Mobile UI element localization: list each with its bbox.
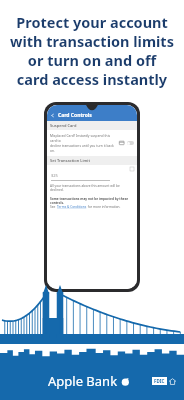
staticText: Some transactions may not be impacted by… [50, 197, 134, 205]
button[interactable]: Terms & Conditions [57, 205, 87, 209]
staticText: Card Controls [58, 112, 92, 119]
staticText: See [50, 205, 57, 209]
staticText: $25 [51, 173, 58, 178]
button[interactable]: Misplaced Card? Instantly suspend this c… [47, 130, 137, 156]
button[interactable]: Back [50, 112, 92, 119]
staticText: for more information. [87, 205, 121, 209]
staticText: FDIC [154, 378, 165, 384]
staticText: Misplaced Card? Instantly suspend this c… [50, 133, 117, 153]
staticText: Set Transaction Limit [50, 158, 90, 163]
staticText: All your transactions above this amount … [50, 184, 134, 192]
button[interactable]: Enable limit [130, 167, 134, 171]
button[interactable]: $25 [51, 173, 133, 181]
staticText: Suspend Card [50, 123, 77, 128]
staticText: Protect your account with transaction li… [10, 12, 174, 90]
staticText: Apple Bank [48, 372, 118, 390]
button[interactable]: Suspend card toggle [127, 141, 134, 145]
